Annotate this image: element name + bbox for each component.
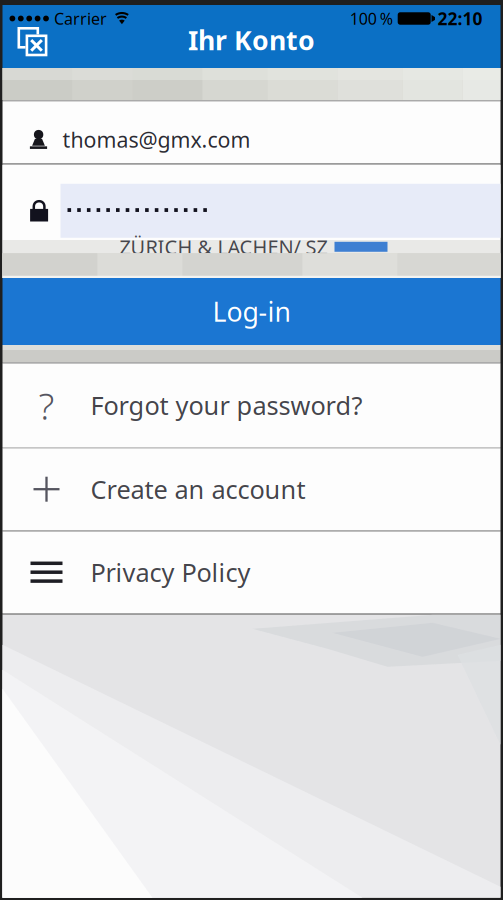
staticText: Carrier [54, 8, 107, 29]
staticText: Forgot your password? [90, 388, 362, 422]
button[interactable]: Create an account [2, 448, 500, 530]
staticText: ZÜRICH & LACHEN/ SZ [119, 233, 327, 260]
staticText: Create an account [90, 472, 305, 506]
button[interactable]: Log-in [2, 278, 500, 345]
button[interactable]: ZÜRICH & LACHEN/ SZ [2, 240, 500, 278]
staticText: Ihr Konto [188, 22, 315, 58]
button[interactable]: thomas@gmx.com [2, 101, 500, 163]
button[interactable]: Cancel [2, 5, 47, 57]
staticText: 100 % [350, 8, 393, 29]
staticText: Log-in [212, 294, 290, 329]
button[interactable]: ? [2, 363, 500, 447]
staticText: ? [38, 380, 54, 430]
staticText: Privacy Policy [90, 555, 250, 589]
button[interactable]: Password [2, 165, 500, 240]
staticText: thomas@gmx.com [62, 125, 250, 153]
button[interactable]: Privacy Policy [2, 531, 500, 613]
staticText: 22:10 [437, 7, 482, 30]
